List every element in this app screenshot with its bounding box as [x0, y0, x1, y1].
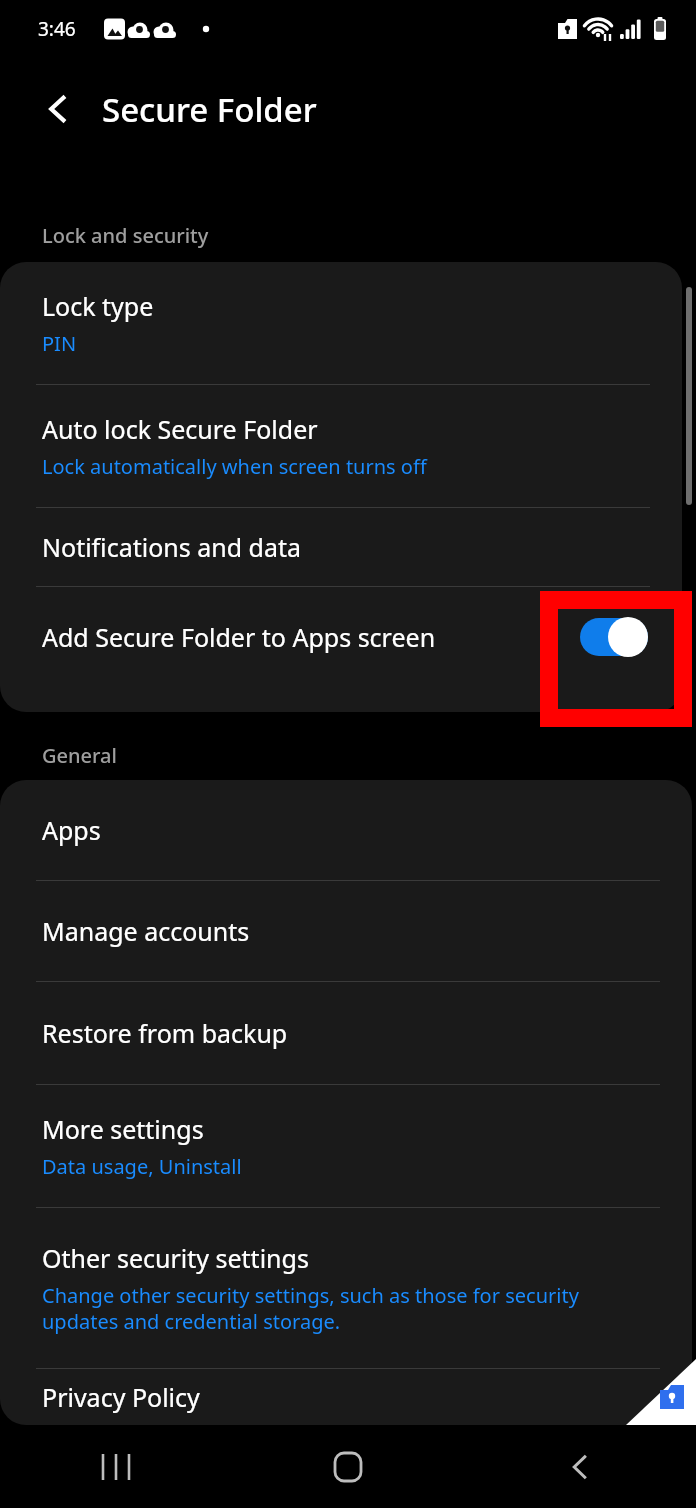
button[interactable]: Restore from backup — [0, 982, 692, 1084]
staticText: Lock type — [42, 289, 154, 323]
button[interactable]: Back — [464, 1425, 696, 1508]
button[interactable]: Manage accounts — [0, 881, 692, 981]
button[interactable]: Apps — [0, 780, 692, 880]
staticText: 3:46 — [38, 16, 76, 42]
staticText: More settings — [42, 1112, 204, 1146]
staticText: Data usage, Uninstall — [42, 1153, 242, 1180]
button[interactable]: Privacy Policy — [0, 1369, 692, 1425]
button[interactable]: More settings — [0, 1085, 692, 1207]
staticText: Secure Folder — [102, 87, 317, 132]
staticText: Manage accounts — [42, 914, 250, 948]
staticText: Add Secure Folder to Apps screen — [42, 620, 580, 654]
staticText: Auto lock Secure Folder — [42, 412, 318, 446]
staticText: Lock automatically when screen turns off — [42, 453, 427, 480]
staticText: PIN — [42, 330, 77, 357]
button[interactable]: Add Secure Folder to Apps screen — [0, 587, 682, 687]
button[interactable]: Auto lock Secure Folder — [0, 385, 682, 507]
staticText: Other security settings — [42, 1241, 309, 1275]
button[interactable]: Other security settings — [0, 1208, 692, 1368]
staticText: Restore from backup — [42, 1016, 288, 1050]
button[interactable]: Back — [26, 77, 90, 141]
button[interactable]: Recent apps — [0, 1425, 232, 1508]
button[interactable]: Home — [232, 1425, 464, 1508]
staticText: Notifications and data — [42, 530, 302, 564]
staticText: Change other security settings, such as … — [42, 1282, 579, 1335]
staticText: General — [42, 742, 117, 769]
staticText: Lock and security — [42, 222, 209, 249]
button[interactable]: Lock type — [0, 262, 682, 384]
staticText: Apps — [42, 813, 101, 847]
button[interactable]: Notifications and data — [0, 508, 682, 586]
staticText: Privacy Policy — [42, 1380, 200, 1414]
